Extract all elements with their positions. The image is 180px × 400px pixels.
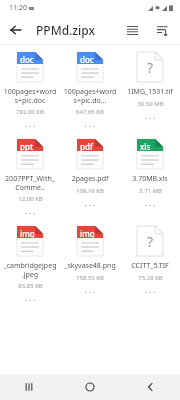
staticText: 1IMG_1531.tif — [123, 87, 177, 97]
button[interactable]: More options — [17, 207, 43, 219]
staticText: _skyvase48.png — [63, 261, 117, 271]
button[interactable]: xls — [120, 132, 180, 211]
button[interactable]: ? — [120, 219, 180, 298]
button[interactable]: More options — [137, 112, 163, 124]
button[interactable]: ppt — [0, 132, 60, 219]
staticText: ? — [147, 58, 154, 77]
button[interactable]: Recents — [14, 374, 44, 400]
staticText: 758.55 KB — [76, 274, 104, 282]
staticText: 647.65 KB — [76, 108, 104, 116]
staticText: 30.50 MB — [137, 100, 164, 108]
button[interactable]: Back — [136, 374, 166, 400]
staticText: 108.16 KB — [76, 187, 104, 195]
button[interactable]: Home — [75, 374, 105, 400]
staticText: img — [80, 228, 95, 239]
staticText: 3.70MB.xls — [123, 174, 177, 184]
staticText: xls — [140, 141, 151, 152]
button[interactable]: pdf — [60, 132, 120, 211]
staticText: 11:20 — [9, 3, 27, 13]
button[interactable]: ? — [120, 45, 180, 124]
staticText: 2007PPT_With_Comme.. — [3, 174, 57, 192]
button[interactable]: More options — [17, 120, 43, 132]
staticText: 2pages.pdf — [63, 174, 117, 184]
staticText: CCITT_5.TIF — [123, 261, 177, 271]
staticText: 100pages+words+pic.doc — [3, 87, 57, 105]
staticText: _cambridgejpeg.jpeg — [3, 261, 57, 279]
staticText: PPMd.zipx — [36, 22, 96, 38]
staticText: ? — [147, 232, 154, 251]
button[interactable]: More options — [137, 286, 163, 298]
staticText: 85.85 KB — [18, 282, 43, 290]
staticText: img — [20, 228, 35, 239]
staticText: doc — [20, 54, 34, 65]
button[interactable]: More options — [77, 120, 103, 132]
button[interactable]: doc — [60, 45, 120, 132]
button[interactable]: More options — [77, 286, 103, 298]
button[interactable]: View mode — [120, 18, 144, 42]
staticText: 12.00 KB — [18, 195, 43, 203]
button[interactable]: More options — [137, 199, 163, 211]
button[interactable]: img — [0, 219, 60, 306]
button[interactable]: Back — [4, 18, 28, 42]
staticText: 3.71 MB — [139, 187, 162, 195]
staticText: ppt — [20, 141, 33, 152]
button[interactable]: doc — [0, 45, 60, 132]
staticText: 75.28 KB — [138, 274, 163, 282]
staticText: doc — [80, 54, 94, 65]
button[interactable]: img — [60, 219, 120, 298]
staticText: 100pages+words+pic.do... — [63, 87, 117, 105]
button[interactable]: More options — [77, 199, 103, 211]
staticText: 782.00 KB — [16, 108, 44, 116]
button[interactable]: Sort — [150, 18, 174, 42]
button[interactable]: More options — [17, 294, 43, 306]
staticText: pdf — [80, 141, 93, 152]
